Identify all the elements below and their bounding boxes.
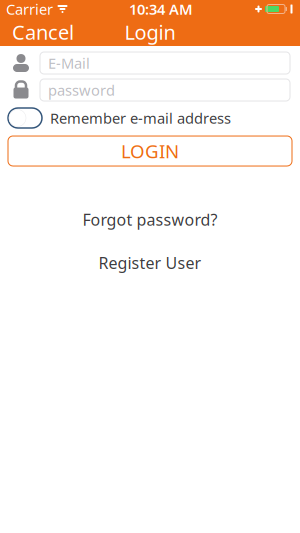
button[interactable]: LOGIN	[8, 136, 292, 166]
staticText: 10:34 AM	[129, 0, 193, 19]
button[interactable]: Remember e-mail address	[8, 108, 42, 128]
staticText: E-Mail	[48, 53, 90, 73]
staticText: Login	[124, 19, 175, 45]
staticText: Cancel	[12, 19, 74, 45]
staticText: LOGIN	[121, 139, 179, 163]
staticText: Carrier	[6, 0, 53, 19]
staticText: password	[48, 80, 115, 100]
button[interactable]: Register User	[84, 247, 215, 278]
staticText: Remember e-mail address	[50, 108, 231, 128]
staticText: Register User	[98, 252, 201, 273]
button[interactable]: Cancel	[0, 18, 86, 46]
button[interactable]: Forgot password?	[68, 204, 231, 235]
staticText: Forgot password?	[82, 209, 217, 230]
